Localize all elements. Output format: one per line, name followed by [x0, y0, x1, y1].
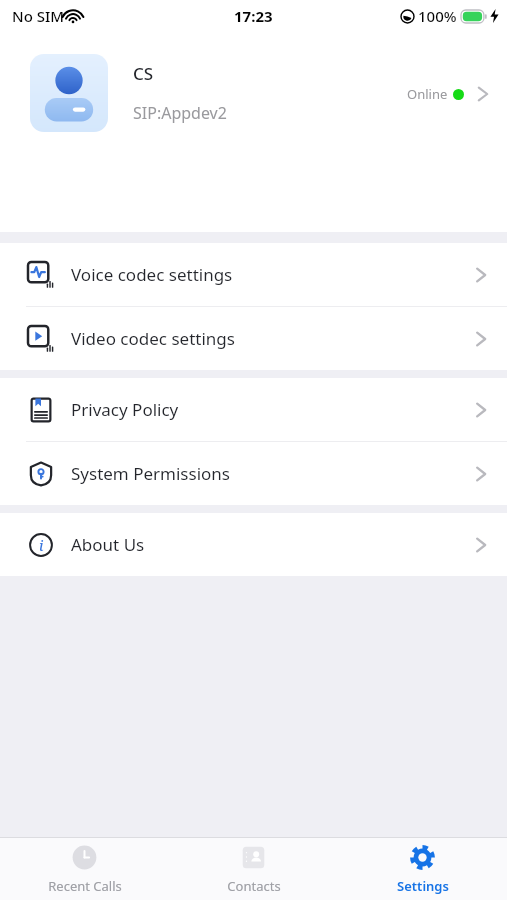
staticText: Settings	[397, 877, 449, 895]
button[interactable]: Contacts	[169, 838, 338, 900]
other: Settings	[409, 844, 436, 871]
staticText: Online	[407, 85, 448, 103]
staticText: Video codec settings	[71, 327, 475, 350]
staticText: About Us	[71, 533, 475, 556]
staticText: Recent Calls	[48, 877, 122, 895]
other: Contacts	[240, 844, 267, 871]
button[interactable]: Settings	[338, 838, 507, 900]
button[interactable]: System Permissions	[0, 442, 507, 505]
staticText: 17:23	[234, 6, 273, 26]
staticText: No SIM	[12, 6, 65, 26]
button[interactable]: i	[0, 513, 507, 576]
button[interactable]: Video codec settings	[0, 307, 507, 370]
button[interactable]: Privacy Policy	[0, 378, 507, 441]
other: Recent Calls	[71, 844, 98, 871]
button[interactable]: Recent Calls	[0, 838, 169, 900]
button[interactable]: CS	[0, 36, 507, 232]
staticText: Privacy Policy	[71, 398, 475, 421]
staticText: i	[39, 536, 44, 555]
staticText: Contacts	[227, 877, 281, 895]
staticText: System Permissions	[71, 462, 475, 485]
staticText: CS	[133, 62, 154, 85]
staticText: SIP:Appdev2	[133, 102, 227, 124]
staticText: 100%	[418, 6, 457, 26]
button[interactable]: Voice codec settings	[0, 243, 507, 306]
staticText: Voice codec settings	[71, 263, 475, 286]
